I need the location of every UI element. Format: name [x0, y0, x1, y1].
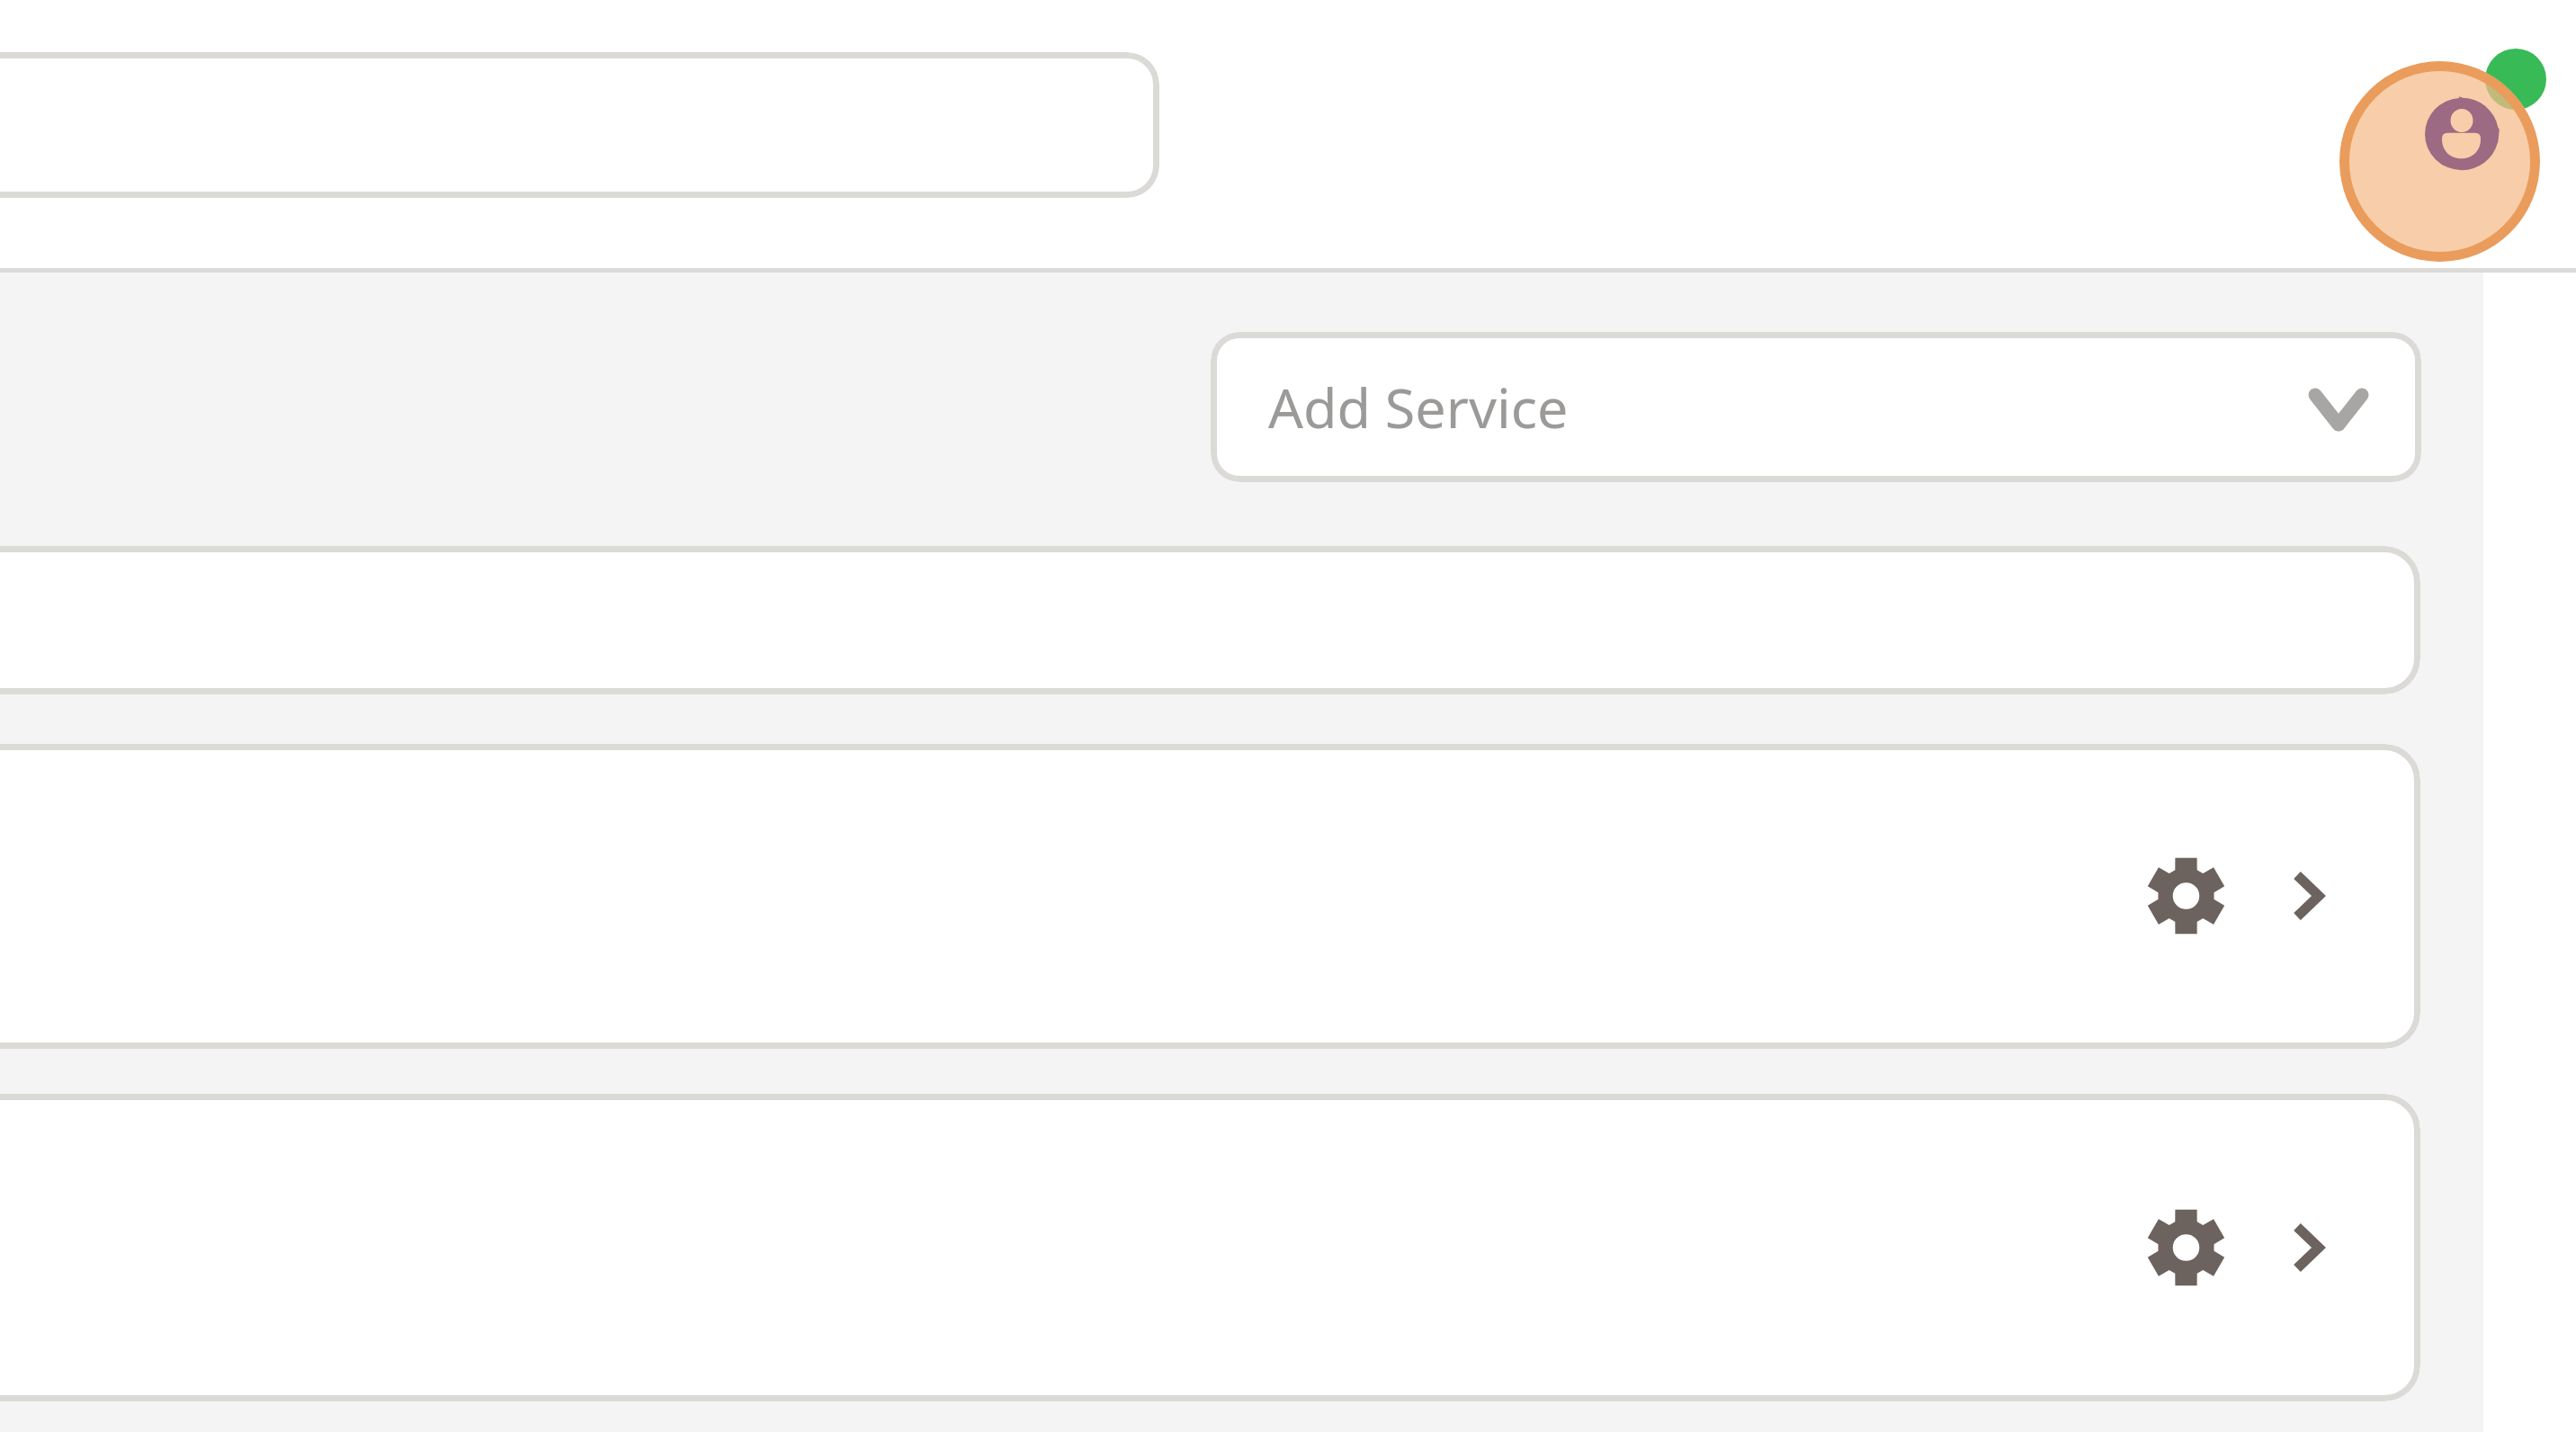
button[interactable]: Open details	[2291, 1221, 2325, 1275]
button[interactable]: Settings	[2148, 856, 2224, 935]
button[interactable]	[0, 52, 1159, 198]
button[interactable]	[0, 546, 2420, 694]
button[interactable]: Settings	[2148, 1208, 2224, 1287]
button[interactable]: Add Service	[1211, 332, 2421, 482]
button[interactable]: Settings	[0, 1094, 2420, 1401]
button[interactable]: Account profile	[2339, 61, 2540, 262]
button[interactable]: Open details	[2291, 869, 2325, 923]
staticText: Add Service	[1268, 370, 1569, 444]
button[interactable]: Settings	[0, 744, 2420, 1049]
